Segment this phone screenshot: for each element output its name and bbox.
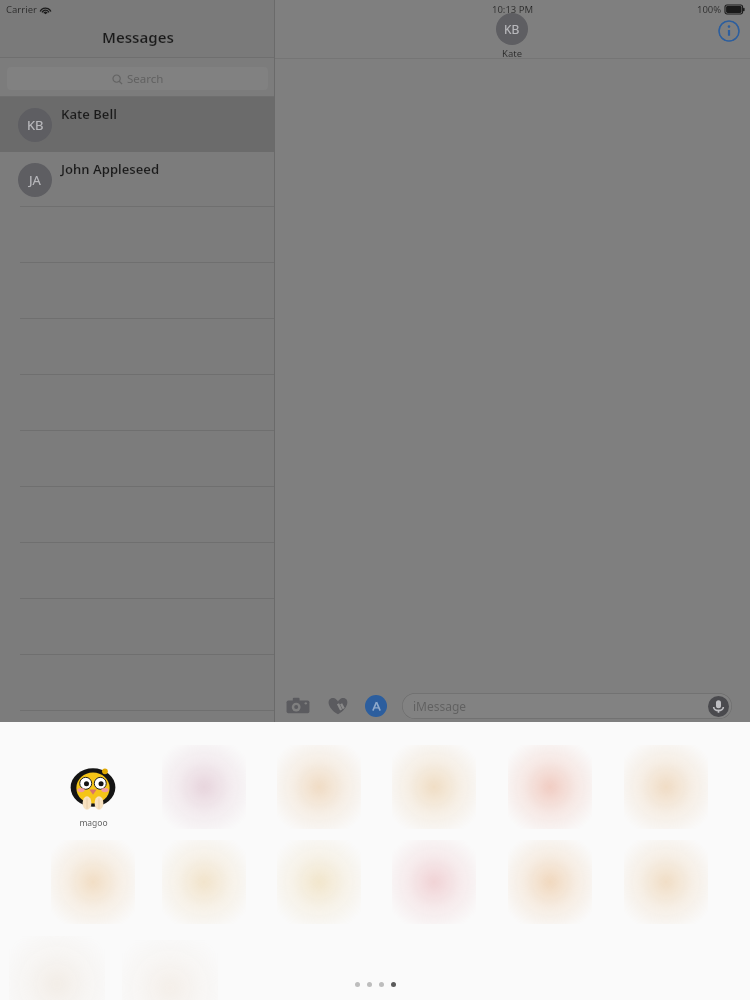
staticText: magoo (79, 817, 108, 829)
staticText: Messages (102, 27, 174, 47)
staticText: KB (27, 116, 44, 134)
button[interactable]: Dictate (708, 696, 729, 717)
button[interactable] (508, 745, 592, 829)
button[interactable]: KB (0, 97, 274, 152)
staticText: 100% (697, 3, 722, 16)
button[interactable]: Camera (285, 695, 311, 717)
button[interactable]: KB (496, 13, 528, 60)
staticText: Kate (502, 47, 522, 60)
staticText: JA (29, 171, 41, 189)
button[interactable] (624, 840, 708, 924)
button[interactable] (392, 840, 476, 924)
button[interactable] (277, 840, 361, 924)
button[interactable]: JA (0, 152, 274, 207)
button[interactable] (51, 840, 135, 924)
button[interactable] (624, 745, 708, 829)
button[interactable]: App Store (365, 695, 387, 717)
button[interactable] (392, 745, 476, 829)
staticText: Carrier (6, 3, 37, 16)
staticText: Kate Bell (61, 105, 117, 123)
button[interactable] (9, 936, 105, 1000)
button[interactable]: Details (718, 20, 740, 42)
button[interactable] (277, 745, 361, 829)
button[interactable] (508, 840, 592, 924)
button[interactable] (162, 745, 246, 829)
button[interactable] (122, 940, 218, 1000)
staticText: Search (127, 71, 164, 87)
button[interactable]: Digital Touch (325, 695, 351, 717)
staticText: 10:13 PM (492, 3, 534, 16)
staticText: John Appleseed (61, 160, 160, 178)
button[interactable]: Search (7, 67, 268, 90)
staticText: iMessage (413, 698, 467, 714)
button[interactable] (162, 840, 246, 924)
staticText: KB (504, 21, 520, 37)
button[interactable]: magoo sticker (67, 762, 119, 829)
button[interactable]: iMessage (402, 693, 732, 719)
